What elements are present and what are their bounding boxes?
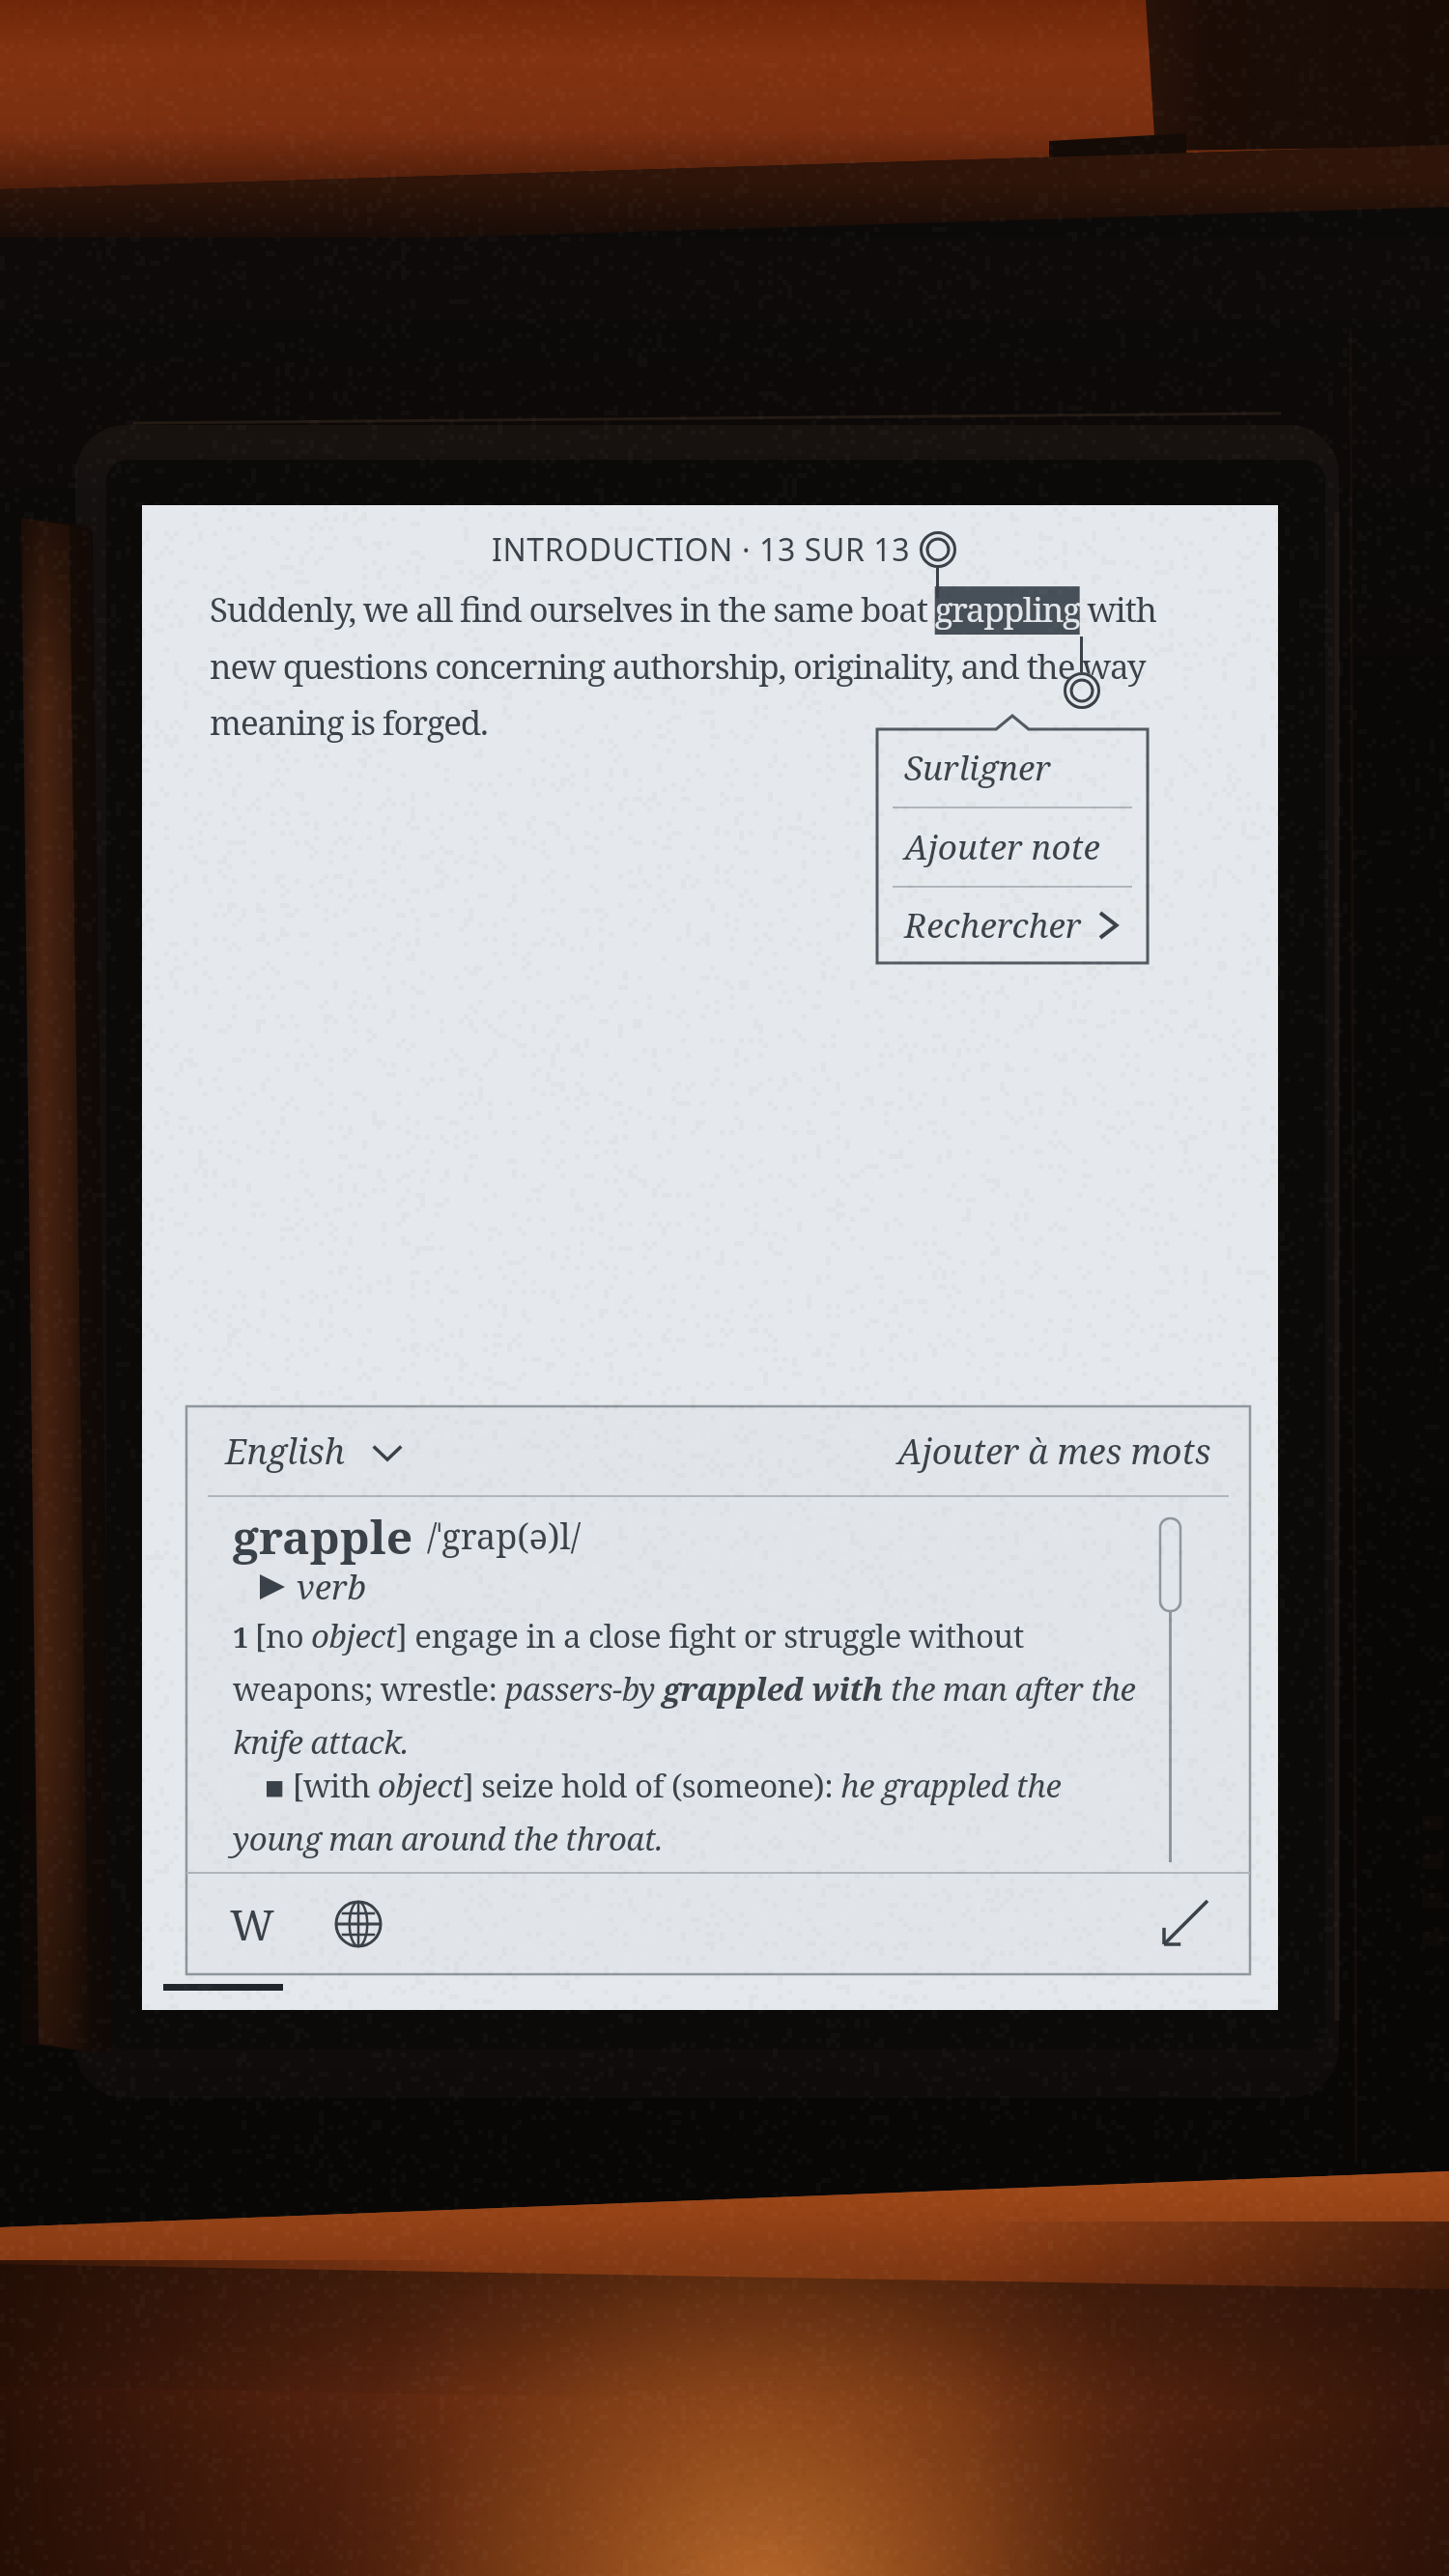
button[interactable]: Wikipedia [221,1893,283,1955]
staticText: W [230,1895,275,1953]
staticText: Suddenly, we all find ourselves in the s… [210,586,1176,745]
button[interactable]: Ajouter note [877,808,1148,886]
staticText: Ajouter note [904,824,1100,870]
staticText: Rechercher [904,902,1082,948]
staticText: INTRODUCTION · 13 SUR 13 [492,528,911,571]
button[interactable]: Ajouter à mes mots [894,1416,1215,1486]
button[interactable]: Selection start handle [919,530,957,569]
staticText: English [225,1428,346,1475]
button[interactable]: English [221,1416,408,1486]
button[interactable]: Translate [327,1893,389,1955]
button[interactable]: Expand [1153,1893,1215,1955]
staticText: 1 [no object] engage in a close fight or… [233,1614,1141,1764]
staticText: grapple [233,1505,413,1568]
staticText: ▪ [with object] seize hold of (someone):… [233,1764,1141,1860]
button[interactable]: Surligner [877,729,1148,807]
staticText: /ˈgrap(ə)l/ [427,1513,582,1560]
button[interactable]: Rechercher [877,888,1148,963]
staticText: verb [297,1564,367,1610]
staticText: Surligner [904,745,1051,791]
button[interactable]: Reading progress [163,1984,283,1991]
button[interactable]: Selection end handle [1063,671,1101,710]
